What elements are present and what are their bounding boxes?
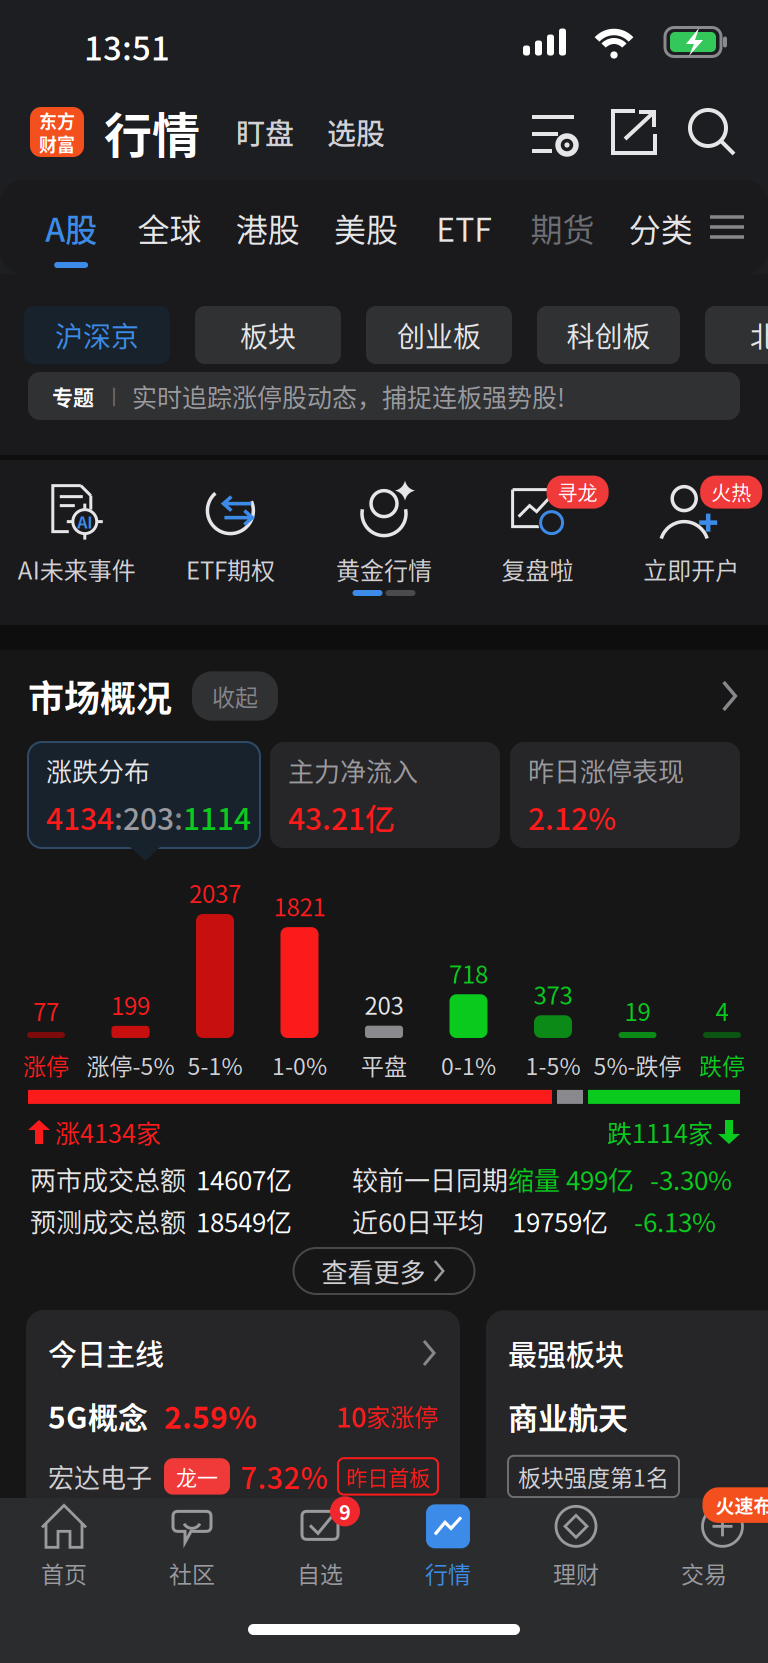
- staticText: 分类: [629, 205, 693, 251]
- button[interactable]: 行情: [384, 1504, 512, 1590]
- button[interactable]: Filter settings: [530, 110, 580, 154]
- button[interactable]: 盯盘: [200, 95, 294, 169]
- button[interactable]: 火速布: [640, 1504, 768, 1590]
- staticText: 1-0%: [272, 1048, 327, 1082]
- staticText: 期货: [531, 205, 595, 251]
- button[interactable]: 沪深京: [24, 306, 170, 364]
- button[interactable]: 科创板: [537, 306, 680, 364]
- staticText: AI未来事件: [18, 552, 136, 586]
- button[interactable]: 板块: [195, 306, 341, 364]
- staticText: 行情: [104, 97, 200, 167]
- staticText: 14607亿: [196, 1160, 292, 1198]
- staticText: 自选: [297, 1556, 343, 1590]
- button[interactable]: 创业板: [366, 306, 512, 364]
- button[interactable]: 涨跌分布: [28, 742, 260, 848]
- staticText: 宏达电子: [48, 1458, 152, 1495]
- staticText: 5%-跌停: [593, 1048, 681, 1082]
- button[interactable]: 昨日涨停表现: [510, 742, 740, 848]
- button[interactable]: 美股: [317, 180, 415, 274]
- staticText: 两市成交总额: [30, 1160, 186, 1198]
- button[interactable]: Share: [610, 108, 658, 156]
- staticText: 首页: [41, 1556, 87, 1590]
- staticText: 沪深京: [55, 315, 139, 355]
- staticText: 19: [624, 993, 650, 1028]
- staticText: 火速布: [715, 1491, 768, 1519]
- staticText: 交易: [681, 1556, 727, 1590]
- staticText: 今日主线: [48, 1332, 164, 1374]
- staticText: 专题: [52, 381, 94, 411]
- staticText: 选股: [327, 111, 385, 153]
- staticText: 43.21亿: [288, 795, 395, 838]
- button[interactable]: 今日主线: [26, 1310, 460, 1517]
- staticText: 复盘啦: [502, 552, 574, 586]
- staticText: 9: [339, 1497, 351, 1526]
- staticText: 丨: [104, 381, 124, 410]
- button[interactable]: 查看更多: [293, 1248, 474, 1294]
- staticText: 寻龙: [558, 478, 598, 507]
- button[interactable]: 选股: [294, 95, 385, 169]
- staticText: 涨4134家: [55, 1114, 161, 1150]
- staticText: 黄金行情: [336, 552, 432, 586]
- staticText: 0-1%: [441, 1048, 496, 1082]
- button[interactable]: 黄金行情: [307, 482, 461, 586]
- button[interactable]: ETF期权: [154, 482, 307, 586]
- staticText: 美股: [334, 205, 398, 251]
- staticText: 主力净流入: [288, 751, 418, 789]
- staticText: 预测成交总额: [30, 1202, 186, 1240]
- staticText: 近60日平均: [352, 1202, 484, 1240]
- staticText: 东方: [39, 107, 75, 133]
- staticText: 创业板: [397, 315, 481, 355]
- button[interactable]: 北交: [705, 306, 768, 364]
- button[interactable]: More categories: [710, 180, 744, 274]
- staticText: 昨日首板: [346, 1461, 430, 1492]
- staticText: AI: [77, 510, 92, 533]
- button[interactable]: 9: [256, 1504, 384, 1590]
- button[interactable]: 期货: [513, 180, 612, 274]
- staticText: 718: [449, 955, 488, 990]
- staticText: 财富: [39, 130, 75, 157]
- staticText: 跌1114家: [607, 1114, 713, 1150]
- staticText: :: [174, 795, 183, 838]
- staticText: 4: [715, 993, 728, 1028]
- staticText: 涨跌分布: [46, 751, 150, 789]
- staticText: 10: [336, 1396, 366, 1435]
- staticText: -6.13%: [634, 1202, 716, 1240]
- staticText: 203: [364, 987, 403, 1022]
- staticText: 实时追踪涨停股动态，捕捉连板强势股!: [132, 378, 565, 414]
- staticText: 19759亿: [512, 1202, 608, 1240]
- staticText: 跌停: [699, 1048, 745, 1082]
- staticText: 板块强度第1名: [518, 1460, 669, 1493]
- button[interactable]: 理财: [512, 1504, 640, 1590]
- button[interactable]: 最强板块: [486, 1310, 768, 1517]
- staticText: 立即开户: [643, 552, 739, 586]
- staticText: 火热: [711, 478, 751, 507]
- button[interactable]: 火热: [614, 482, 768, 586]
- staticText: 2.59%: [164, 1394, 257, 1437]
- staticText: 4134: [46, 795, 114, 838]
- button[interactable]: 全球: [120, 180, 219, 274]
- button[interactable]: 首页: [0, 1504, 128, 1590]
- button[interactable]: 市场概况: [0, 650, 768, 742]
- button[interactable]: 主力净流入: [270, 742, 500, 848]
- staticText: 涨停: [23, 1048, 69, 1082]
- staticText: 昨日涨停表现: [528, 751, 684, 789]
- button[interactable]: Search: [686, 107, 736, 157]
- staticText: 缩量 499亿: [508, 1160, 634, 1198]
- staticText: 社区: [169, 1556, 215, 1590]
- button[interactable]: ETF: [415, 180, 513, 274]
- button[interactable]: AI: [0, 482, 154, 586]
- staticText: 7.32%: [240, 1455, 327, 1497]
- button[interactable]: 寻龙: [461, 482, 614, 586]
- button[interactable]: 港股: [219, 180, 317, 274]
- staticText: 家涨停: [366, 1398, 438, 1433]
- staticText: :: [114, 795, 123, 838]
- staticText: 港股: [236, 205, 300, 251]
- staticText: 1114: [183, 795, 251, 838]
- staticText: 较前一日同期: [352, 1160, 508, 1198]
- staticText: 5G概念: [48, 1394, 148, 1437]
- button[interactable]: A股: [22, 180, 120, 274]
- button[interactable]: 分类: [612, 180, 710, 274]
- button[interactable]: 社区: [128, 1504, 256, 1590]
- button[interactable]: 东方: [30, 107, 84, 157]
- staticText: 收起: [212, 679, 258, 713]
